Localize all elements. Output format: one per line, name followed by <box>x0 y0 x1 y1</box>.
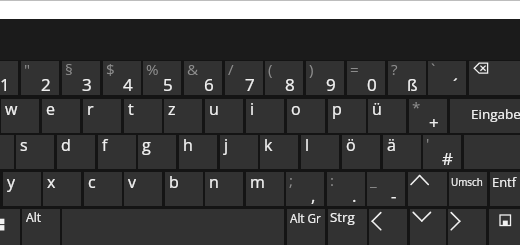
staticText: n <box>209 171 219 193</box>
button[interactable]: ' <box>423 135 461 169</box>
button[interactable]: ü <box>368 99 406 133</box>
staticText: = <box>350 59 359 80</box>
button[interactable]: Windows <box>0 209 20 245</box>
staticText: ( <box>268 59 273 80</box>
staticText: ´ <box>453 73 458 96</box>
staticText: § <box>65 59 73 80</box>
button[interactable]: % <box>143 61 181 95</box>
button[interactable]: d <box>57 135 95 169</box>
button[interactable]: t <box>124 99 162 133</box>
button[interactable]: = <box>347 61 385 95</box>
staticText: c <box>88 171 96 193</box>
staticText: z <box>168 98 176 120</box>
staticText: : <box>330 170 334 191</box>
staticText: o <box>291 98 301 120</box>
button[interactable]: Umsch <box>449 172 487 206</box>
button[interactable]: Down arrow <box>410 209 446 245</box>
button[interactable]: / <box>225 61 263 95</box>
button[interactable]: z <box>164 99 202 133</box>
staticText: * <box>412 97 421 118</box>
button[interactable]: ; <box>286 172 324 206</box>
button[interactable]: j <box>220 135 258 169</box>
staticText: j <box>224 134 229 156</box>
button[interactable]: ? <box>388 61 426 95</box>
staticText: 2 <box>41 73 51 96</box>
button[interactable]: c <box>84 172 122 206</box>
staticText: Entf <box>492 173 516 191</box>
button[interactable]: ) <box>306 61 344 95</box>
button[interactable]: y <box>3 172 41 206</box>
button[interactable]: ä <box>383 135 421 169</box>
staticText: e <box>46 98 55 120</box>
staticText: & <box>187 59 199 80</box>
staticText: % <box>146 59 159 80</box>
button[interactable]: w <box>1 99 39 133</box>
staticText: Strg <box>330 208 355 226</box>
staticText: u <box>209 98 219 120</box>
button[interactable]: r <box>83 99 121 133</box>
button[interactable]: ` <box>428 61 466 95</box>
button[interactable]: p <box>328 99 366 133</box>
staticText: $ <box>106 59 115 80</box>
staticText: m <box>250 171 265 193</box>
button[interactable]: f <box>98 135 136 169</box>
button[interactable]: n <box>205 172 243 206</box>
staticText: # <box>442 147 453 170</box>
button[interactable]: Backspace <box>469 61 520 95</box>
staticText: h <box>183 134 193 156</box>
button[interactable]: _ <box>367 172 405 206</box>
button[interactable]: e <box>42 99 80 133</box>
button[interactable]: ( <box>265 61 303 95</box>
button[interactable]: § <box>62 61 100 95</box>
staticText: Alt <box>26 209 42 226</box>
staticText: t <box>128 98 134 120</box>
staticText: b <box>169 171 179 193</box>
button[interactable]: Entf <box>490 172 520 206</box>
staticText: p <box>332 98 342 120</box>
button[interactable]: Alt Gr <box>287 209 325 245</box>
button[interactable]: Right arrow <box>448 209 486 245</box>
staticText: ß <box>407 73 418 96</box>
button[interactable]: x <box>43 172 81 206</box>
button[interactable]: Keyboard options <box>489 209 520 245</box>
button[interactable]: v <box>124 172 162 206</box>
staticText: f <box>102 134 108 156</box>
button[interactable]: o <box>287 99 325 133</box>
button[interactable]: g <box>138 135 176 169</box>
button[interactable]: 1 <box>0 61 18 95</box>
staticText: ' <box>426 133 430 154</box>
staticText: ü <box>372 98 382 120</box>
button[interactable]: u <box>205 99 243 133</box>
staticText: ä <box>387 134 396 156</box>
button[interactable]: h <box>179 135 217 169</box>
button[interactable]: ö <box>342 135 380 169</box>
button[interactable]: : <box>327 172 365 206</box>
staticText: , <box>311 184 316 207</box>
button[interactable]: m <box>246 172 284 206</box>
staticText: ? <box>391 59 398 80</box>
button[interactable]: Strg <box>328 209 367 245</box>
button[interactable]: $ <box>103 61 141 95</box>
staticText: 8 <box>285 73 295 96</box>
staticText: 9 <box>326 73 336 96</box>
button[interactable]: & <box>184 61 222 95</box>
staticText: + <box>429 111 439 134</box>
button[interactable]: b <box>165 172 203 206</box>
button[interactable]: * <box>409 99 447 133</box>
staticText: ö <box>346 134 356 156</box>
button[interactable]: Eingabe <box>450 99 520 133</box>
button[interactable]: i <box>246 99 284 133</box>
button[interactable]: s <box>16 135 54 169</box>
button[interactable]: " <box>21 61 59 95</box>
staticText: - <box>391 184 397 207</box>
button[interactable]: k <box>260 135 298 169</box>
staticText: 4 <box>123 73 133 96</box>
button[interactable]: l <box>301 135 339 169</box>
button[interactable]: Left arrow <box>369 209 407 245</box>
staticText: g <box>142 134 151 156</box>
button[interactable]: Shift <box>408 172 447 206</box>
button[interactable]: Alt <box>22 209 60 245</box>
